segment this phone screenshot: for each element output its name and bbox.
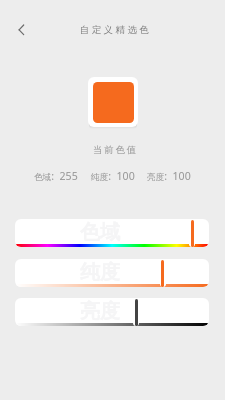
- staticText: 当前色值: [3, 144, 225, 156]
- staticText: 色域: [80, 220, 120, 245]
- button[interactable]: 色域: [15, 219, 209, 247]
- button[interactable]: Back: [11, 18, 33, 40]
- staticText: 亮度: [80, 299, 120, 324]
- button[interactable]: 纯度: [15, 259, 209, 287]
- staticText: 色域: 255: [34, 169, 78, 183]
- staticText: 纯度: [80, 260, 120, 285]
- staticText: 纯度: 100: [91, 169, 135, 183]
- button[interactable]: [88, 77, 138, 127]
- staticText: 自定义精选色: [3, 24, 225, 36]
- staticText: 亮度: 100: [147, 169, 191, 183]
- button[interactable]: 亮度: [15, 298, 209, 326]
